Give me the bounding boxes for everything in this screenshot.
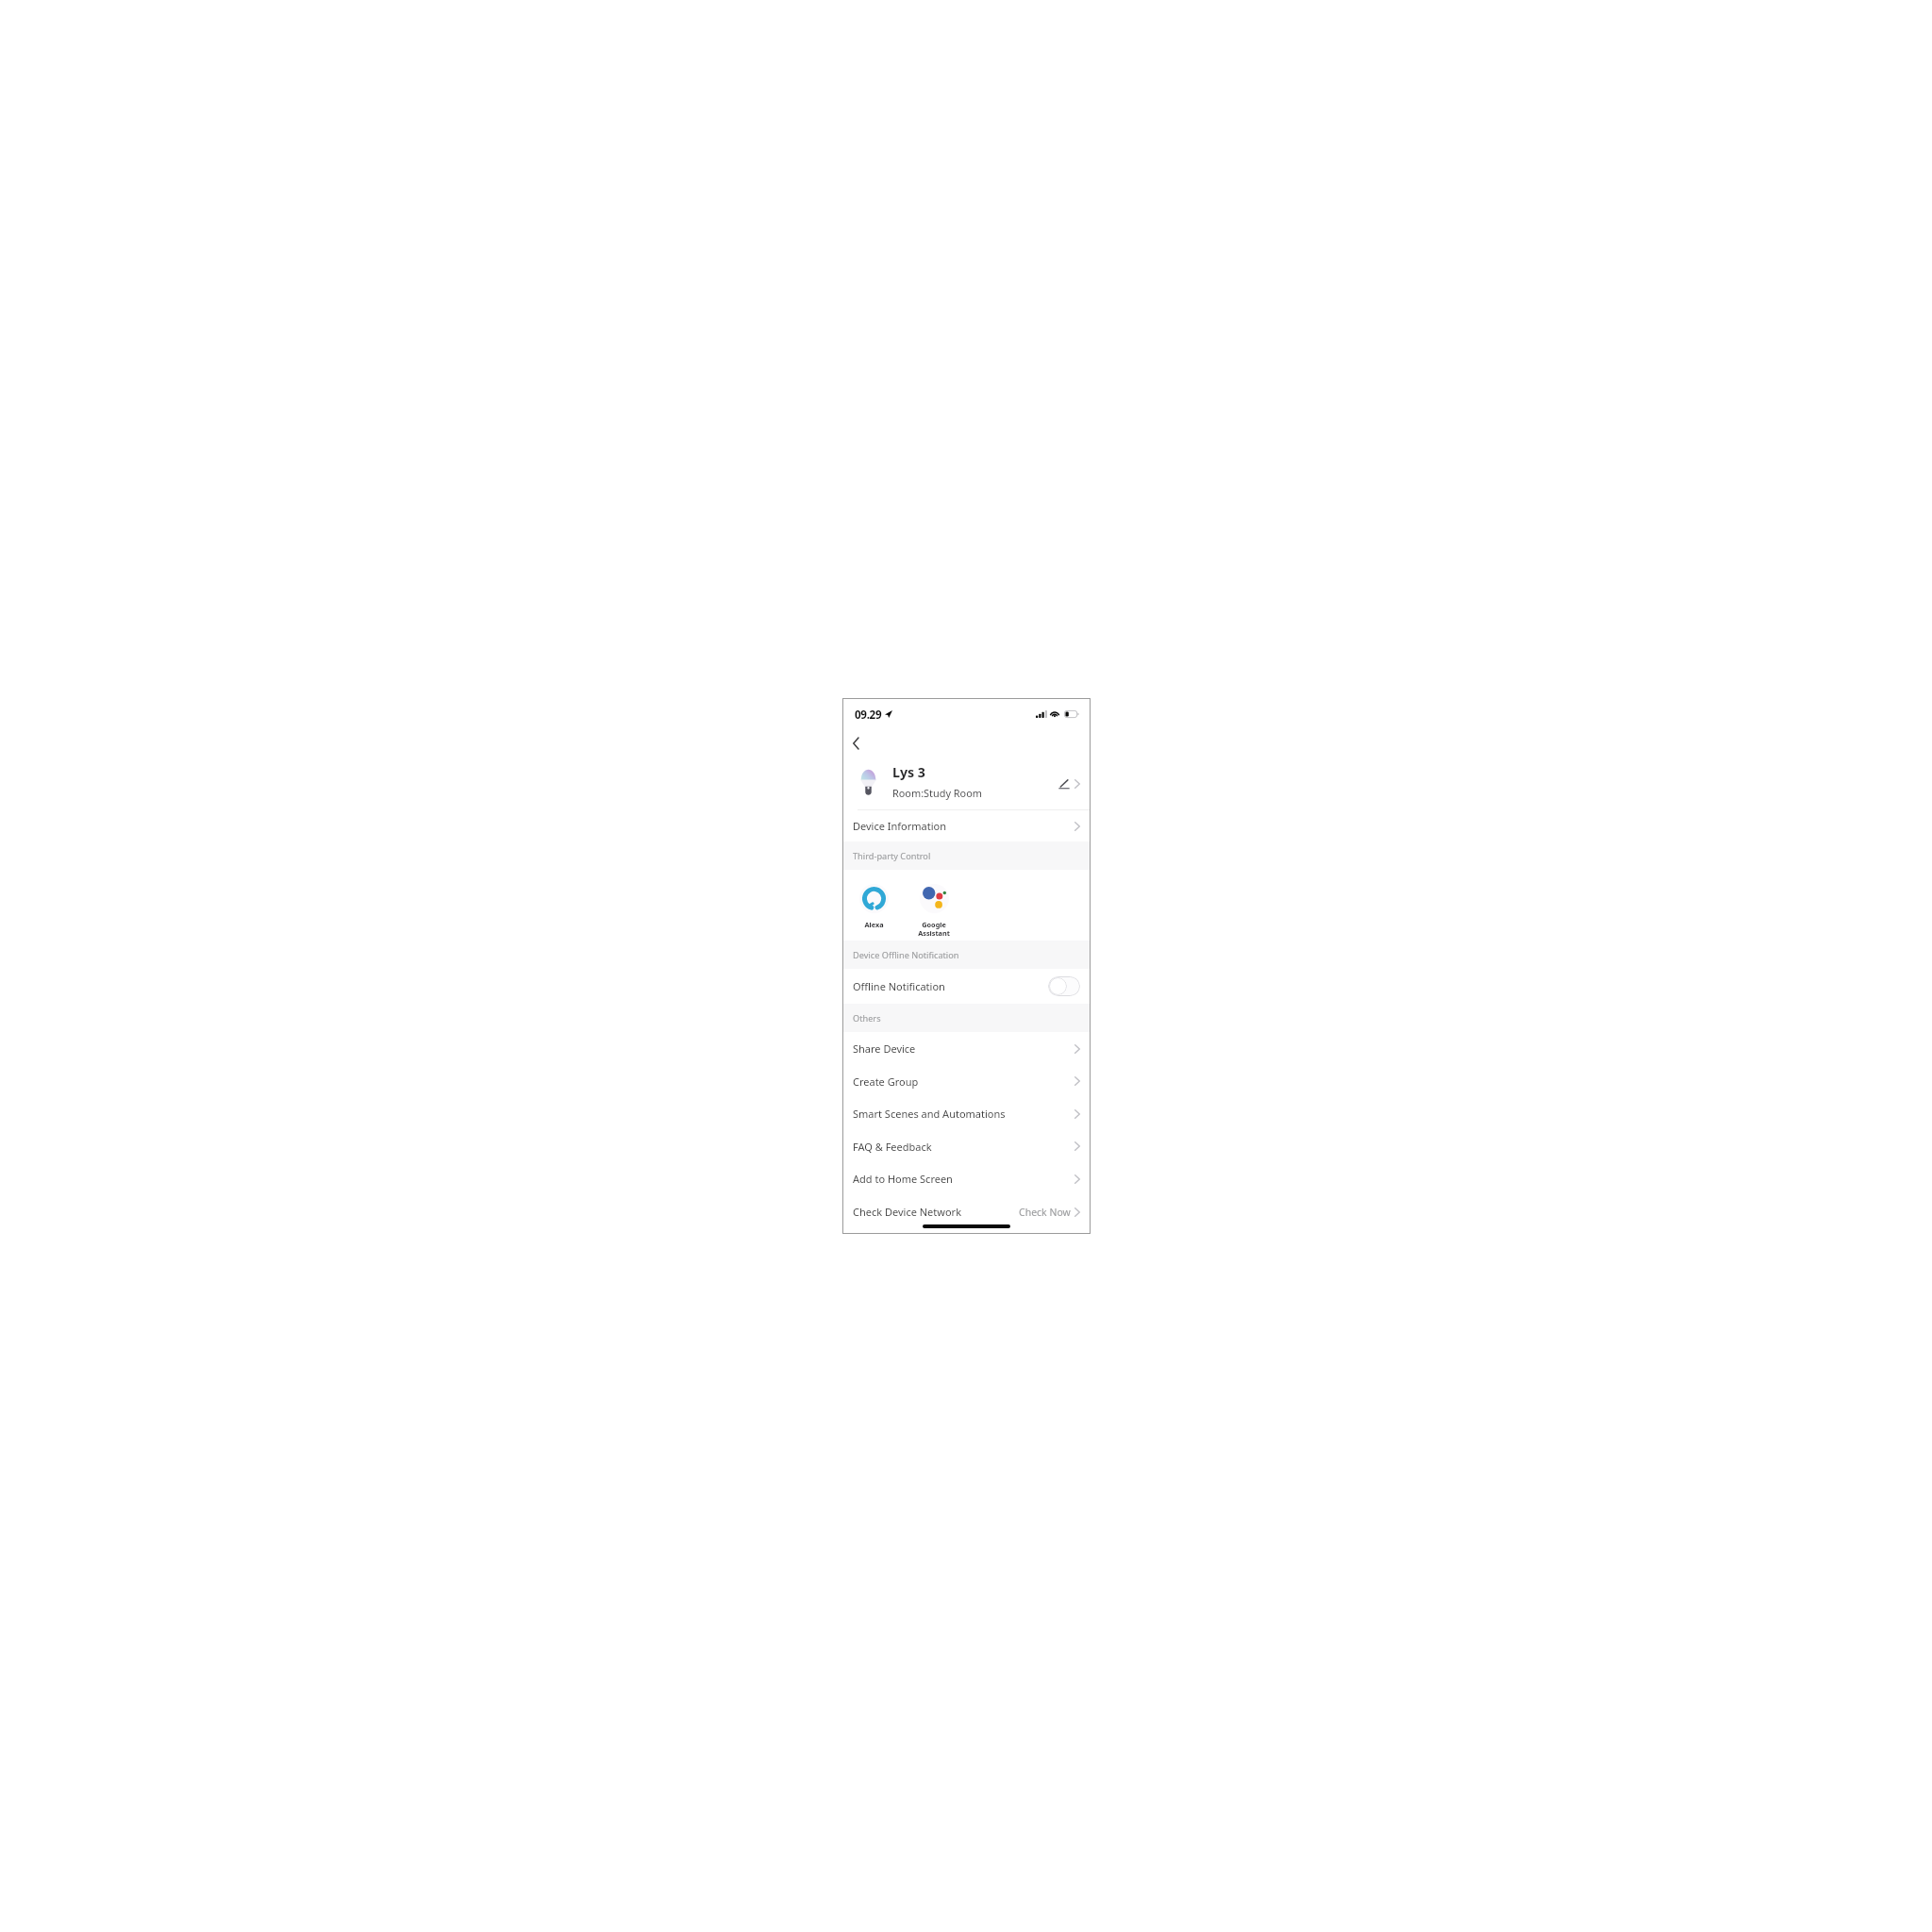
button[interactable]: Create Group xyxy=(842,1065,1091,1097)
staticText: Smart Scenes and Automations xyxy=(853,1107,1074,1121)
staticText: Device Information xyxy=(853,819,1074,833)
staticText: 09.29 xyxy=(855,708,882,723)
staticText: Device Offline Notification xyxy=(853,949,959,961)
staticText: Offline Notification xyxy=(853,979,1048,993)
staticText: Share Device xyxy=(853,1041,1074,1056)
staticText: Room:Study Room xyxy=(892,786,982,800)
staticText: Third-party Control xyxy=(853,850,931,862)
button[interactable]: Alexa xyxy=(855,870,892,941)
button[interactable]: Offline Notification xyxy=(842,969,1091,1004)
button[interactable]: FAQ & Feedback xyxy=(842,1130,1091,1162)
staticText: Google Assistant xyxy=(918,920,950,938)
button[interactable]: Google Assistant xyxy=(915,870,953,941)
button[interactable]: Back xyxy=(842,729,1091,758)
button[interactable]: Add to Home Screen xyxy=(842,1162,1091,1195)
button[interactable]: Lys 3 xyxy=(842,758,1091,809)
button[interactable]: Share Device xyxy=(842,1032,1091,1065)
staticText: Add to Home Screen xyxy=(853,1172,1074,1186)
button[interactable]: Offline Notification toggle, off xyxy=(1048,976,1080,996)
button[interactable]: Smart Scenes and Automations xyxy=(842,1097,1091,1130)
staticText: FAQ & Feedback xyxy=(853,1140,1074,1154)
button[interactable]: Device Information xyxy=(842,810,1091,841)
staticText: Lys 3 xyxy=(892,763,925,781)
staticText: Alexa xyxy=(864,920,884,929)
button[interactable]: Edit device name xyxy=(1058,779,1070,789)
staticText: Others xyxy=(853,1012,881,1024)
staticText: Check Now xyxy=(1019,1206,1071,1219)
staticText: Check Device Network xyxy=(853,1205,1019,1219)
button[interactable]: Check Device Network xyxy=(842,1195,1091,1228)
staticText: Create Group xyxy=(853,1074,1074,1089)
